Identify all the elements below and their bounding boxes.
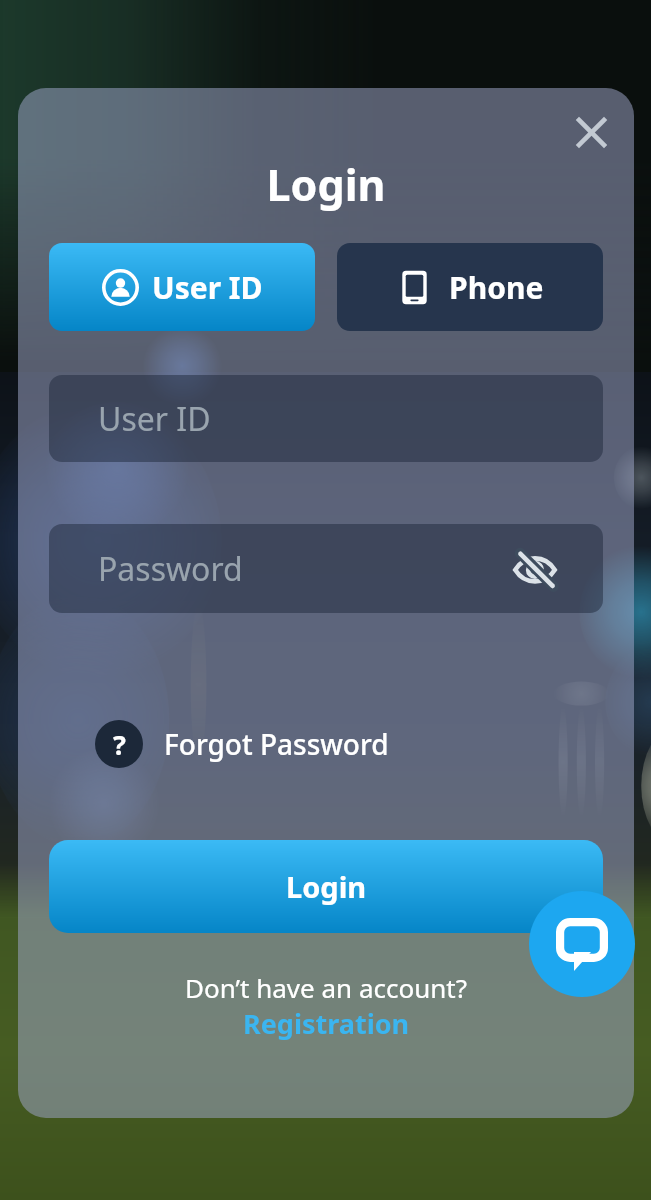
staticText: Phone xyxy=(449,267,544,308)
button[interactable]: User ID xyxy=(49,375,603,462)
button[interactable]: ? xyxy=(95,710,389,778)
staticText: User ID xyxy=(152,267,263,308)
button[interactable]: Phone xyxy=(337,243,603,331)
button[interactable]: Show password xyxy=(509,543,561,595)
staticText: Don’t have an account? xyxy=(18,970,634,1005)
staticText: Registration xyxy=(243,1005,410,1042)
button[interactable]: Registration xyxy=(18,1005,634,1042)
button[interactable]: Password xyxy=(49,524,603,613)
staticText: Login xyxy=(286,867,367,906)
staticText: Password xyxy=(98,547,243,591)
button[interactable]: Chat xyxy=(529,891,635,997)
button[interactable]: Login xyxy=(49,840,603,933)
button[interactable]: User ID xyxy=(49,243,315,331)
staticText: Forgot Password xyxy=(164,725,389,763)
staticText: Login xyxy=(18,155,634,214)
staticText: ? xyxy=(113,726,126,763)
button[interactable]: Close xyxy=(566,107,616,157)
staticText: User ID xyxy=(98,397,211,441)
